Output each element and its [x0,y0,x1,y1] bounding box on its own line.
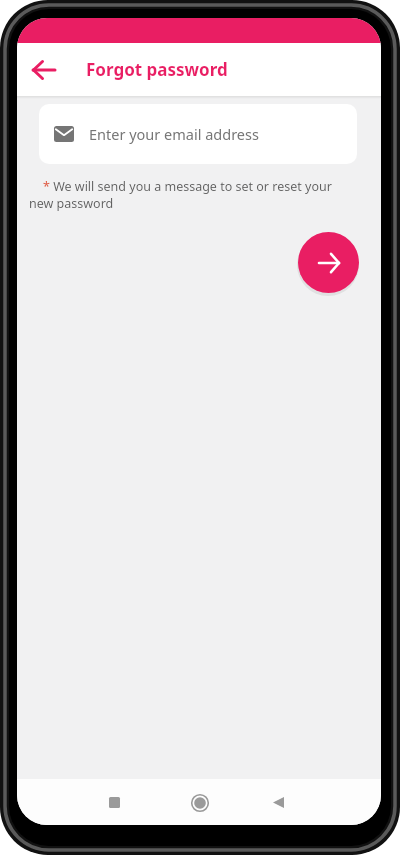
button[interactable] [267,791,290,814]
button[interactable] [103,791,126,814]
staticText: * We will send you a message to set or r… [43,178,332,195]
button[interactable] [298,232,359,293]
button[interactable]: Enter your email address [39,104,357,164]
staticText: Forgot password [86,58,228,81]
button[interactable] [22,48,66,92]
staticText: Enter your email address [89,124,259,144]
button[interactable] [188,791,211,814]
staticText: new password [29,195,114,212]
